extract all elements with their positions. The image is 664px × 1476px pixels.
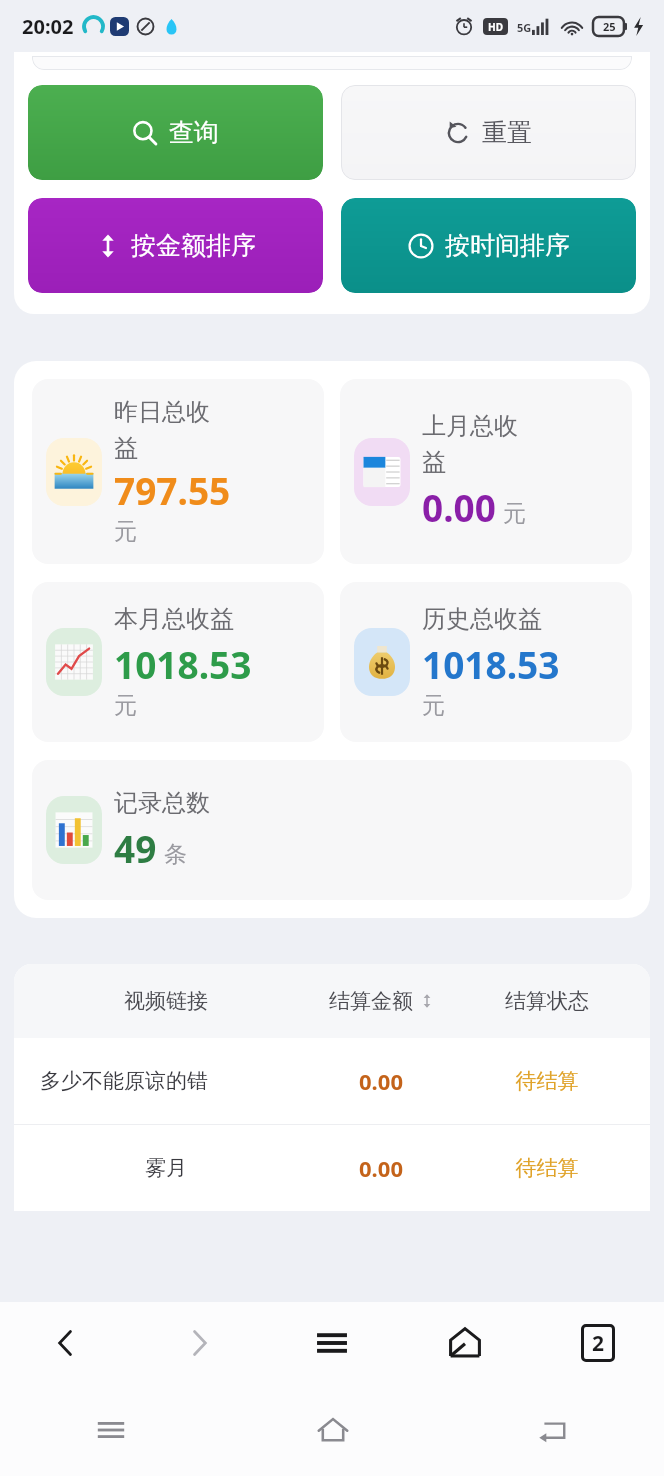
staticText: 元 [114, 691, 137, 720]
staticText: 2 [592, 1329, 605, 1358]
button[interactable]: 查询 [28, 85, 323, 180]
staticText: 本月总收益 [114, 604, 234, 634]
staticText: 元 [114, 517, 137, 546]
staticText: 重置 [482, 117, 532, 148]
button[interactable]: Recent apps [0, 1384, 222, 1476]
staticText: 20:02 [22, 13, 74, 40]
button[interactable]: 按金额排序 [28, 198, 323, 293]
button[interactable]: 本月总收益 [32, 582, 324, 742]
staticText: 0.00 [292, 1066, 470, 1096]
staticText: 0.00 [292, 1153, 470, 1183]
button[interactable]: Back [0, 1302, 132, 1384]
staticText: 上月总收 益 [422, 411, 518, 477]
button[interactable]: Home [222, 1384, 443, 1476]
staticText: 按时间排序 [445, 230, 570, 261]
staticText: 1018.53 [422, 639, 560, 689]
staticText: 797.55 [114, 465, 231, 515]
staticText: 待结算 [470, 1155, 624, 1181]
staticText: 昨日总收 益 [114, 397, 210, 463]
staticText: 条 [164, 840, 187, 869]
staticText: 按金额排序 [131, 230, 256, 261]
button[interactable]: Menu [265, 1302, 398, 1384]
button[interactable]: 历史总收益 [340, 582, 632, 742]
staticText: 查询 [169, 117, 219, 148]
staticText: 视频链接 [40, 988, 292, 1014]
button[interactable]: Home [398, 1302, 531, 1384]
button[interactable]: 记录总数 [32, 760, 632, 900]
button[interactable]: 雾月 [14, 1125, 650, 1211]
button[interactable]: Forward [132, 1302, 265, 1384]
button[interactable]: 昨日总收 益 [32, 379, 324, 564]
staticText: 结算金额 [329, 988, 413, 1014]
staticText: 多少不能原谅的错 [40, 1068, 292, 1094]
staticText: 记录总数 [114, 788, 210, 818]
button[interactable]: Tabs: 2 open [531, 1302, 664, 1384]
staticText: 结算状态 [470, 988, 624, 1014]
staticText: HD [488, 20, 503, 34]
button[interactable]: 按时间排序 [341, 198, 636, 293]
button[interactable]: 重置 [341, 85, 636, 180]
staticText: 0.00 [422, 482, 496, 532]
staticText: 元 [503, 499, 526, 528]
button[interactable]: 多少不能原谅的错 [14, 1038, 650, 1124]
staticText: 雾月 [40, 1155, 292, 1181]
staticText: 待结算 [470, 1068, 624, 1094]
staticText: 历史总收益 [422, 604, 542, 634]
button[interactable]: 上月总收 益 [340, 379, 632, 564]
staticText: 1018.53 [114, 639, 252, 689]
staticText: 元 [422, 691, 445, 720]
staticText: 5G [517, 20, 532, 35]
staticText: 49 [114, 823, 157, 873]
staticText: 25 [603, 19, 616, 34]
button[interactable]: Back [443, 1384, 664, 1476]
